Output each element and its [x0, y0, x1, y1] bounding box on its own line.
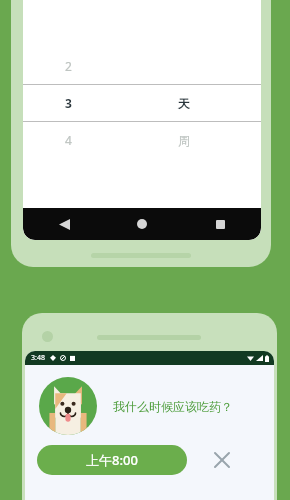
staticText: 2 [65, 58, 72, 74]
staticText: 3:48 [31, 353, 45, 363]
button[interactable]: Back [51, 211, 77, 237]
button[interactable]: Home [129, 211, 155, 237]
staticText: 周 [178, 133, 190, 148]
button[interactable]: 上午8:00 [37, 445, 187, 475]
button[interactable]: 4 [23, 122, 261, 158]
button[interactable]: Recents [207, 211, 233, 237]
button[interactable]: Dog avatar [39, 377, 97, 435]
staticText: 4 [65, 132, 72, 148]
button[interactable]: Dismiss [209, 447, 235, 473]
staticText: 我什么时候应该吃药？ [113, 399, 233, 414]
button[interactable]: 3 [23, 85, 261, 121]
staticText: 天 [178, 96, 190, 111]
staticText: 上午8:00 [86, 451, 138, 469]
staticText: 3 [65, 95, 72, 111]
